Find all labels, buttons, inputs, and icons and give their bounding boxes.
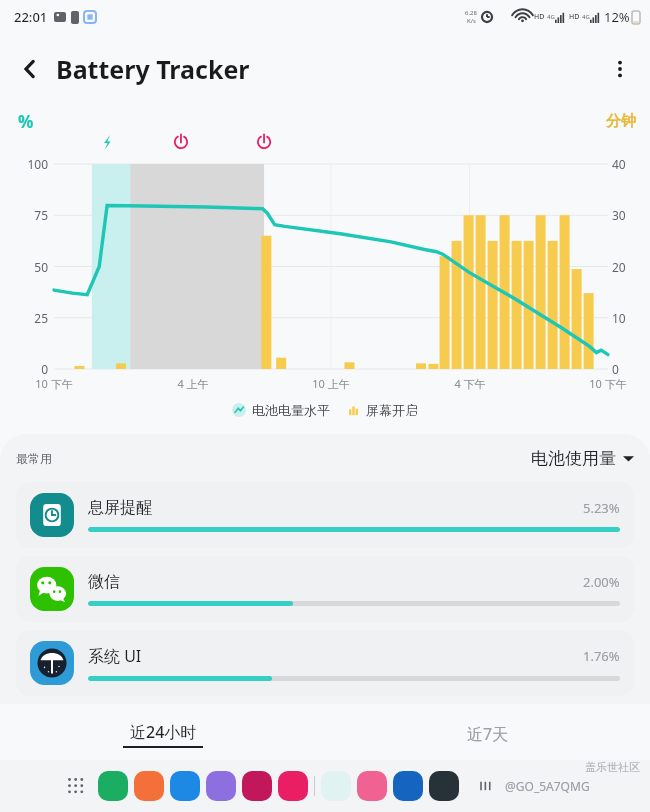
staticText: 分钟 <box>606 112 636 131</box>
staticText: 40 <box>612 156 642 172</box>
staticText: 近24小时 <box>130 721 197 743</box>
staticText: 近7天 <box>467 723 509 745</box>
button[interactable]: 息屏提醒 <box>16 482 634 548</box>
staticText: 2.00% <box>583 573 620 591</box>
staticText: 25 <box>8 310 48 326</box>
staticText: 1.76% <box>583 647 620 665</box>
staticText: 最常用 <box>16 451 52 466</box>
staticText: 4 下午 <box>440 376 500 391</box>
button[interactable]: App <box>134 771 164 801</box>
button[interactable]: 电池使用量 <box>531 448 634 469</box>
staticText: 电池使用量 <box>531 448 616 469</box>
staticText: 100 <box>8 156 48 172</box>
staticText: 12% <box>604 8 630 26</box>
staticText: 4G <box>582 13 590 21</box>
staticText: 系统 UI <box>88 645 583 667</box>
staticText: 5.23% <box>583 499 620 517</box>
staticText: 10 下午 <box>578 376 638 391</box>
staticText: K/s <box>467 17 476 25</box>
button[interactable]: App <box>357 771 387 801</box>
staticText: 50 <box>8 259 48 275</box>
staticText: 4G <box>547 13 555 21</box>
staticText: 盖乐世社区 <box>585 760 640 774</box>
staticText: 22:01 <box>14 8 48 26</box>
button[interactable]: 电池电量水平 <box>232 402 330 418</box>
staticText: 0 <box>612 361 642 377</box>
staticText: 20 <box>612 259 642 275</box>
staticText: 0 <box>8 361 48 377</box>
staticText: @GO_5A7QMG <box>505 778 590 794</box>
staticText: 微信 <box>88 572 583 592</box>
button[interactable]: Apps <box>60 770 92 802</box>
button[interactable]: App <box>98 771 128 801</box>
button[interactable]: Back <box>8 47 52 91</box>
staticText: 6.28 <box>465 9 477 17</box>
button[interactable]: 近24小时 <box>0 708 325 760</box>
staticText: 10 <box>612 310 642 326</box>
button[interactable]: App <box>242 771 272 801</box>
staticText: 电池电量水平 <box>252 402 330 418</box>
button[interactable]: 近7天 <box>325 708 650 760</box>
button[interactable]: More options <box>598 47 642 91</box>
button[interactable]: 微信 <box>16 556 634 622</box>
staticText: HD <box>569 12 580 22</box>
button[interactable]: App <box>278 771 308 801</box>
staticText: 30 <box>612 207 642 223</box>
button[interactable]: App <box>206 771 236 801</box>
button[interactable]: 系统 UI <box>16 630 634 696</box>
staticText: 10 上午 <box>301 376 361 391</box>
staticText: HD <box>534 12 545 22</box>
button[interactable]: App <box>429 771 459 801</box>
button[interactable]: App <box>393 771 423 801</box>
staticText: % <box>18 110 34 133</box>
button[interactable]: App <box>170 771 200 801</box>
staticText: 10 下午 <box>24 376 84 391</box>
staticText: 4 上午 <box>163 376 223 391</box>
staticText: 息屏提醒 <box>88 498 583 518</box>
button[interactable]: 屏幕开启 <box>346 402 418 418</box>
staticText: Battery Tracker <box>56 52 250 86</box>
button[interactable]: App <box>321 771 351 801</box>
staticText: 屏幕开启 <box>366 402 418 418</box>
staticText: 75 <box>8 207 48 223</box>
